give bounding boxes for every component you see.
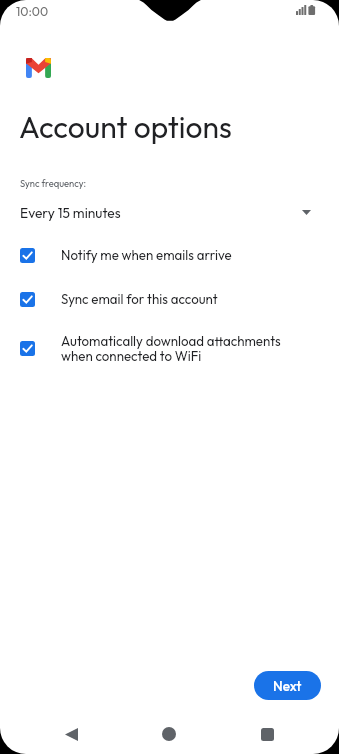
button[interactable]: Back xyxy=(55,718,87,750)
staticText: Sync email for this account xyxy=(61,291,218,308)
button[interactable]: Home xyxy=(153,718,185,750)
button[interactable]: Recent apps xyxy=(251,718,283,750)
button[interactable]: Next xyxy=(254,671,321,700)
button[interactable]: Automatically download attachments when … xyxy=(0,335,339,379)
staticText: Automatically download attachments when … xyxy=(61,333,281,364)
button[interactable]: Every 15 minutes xyxy=(0,201,339,226)
button[interactable]: Notify me when emails arrive xyxy=(0,242,339,272)
staticText: Account options xyxy=(19,108,232,146)
staticText: 10:00 xyxy=(16,4,49,20)
staticText: Next xyxy=(273,677,302,694)
button[interactable]: Sync email for this account xyxy=(0,286,339,316)
staticText: Every 15 minutes xyxy=(20,204,121,221)
staticText: Sync frequency: xyxy=(20,178,87,190)
staticText: Notify me when emails arrive xyxy=(61,247,232,264)
